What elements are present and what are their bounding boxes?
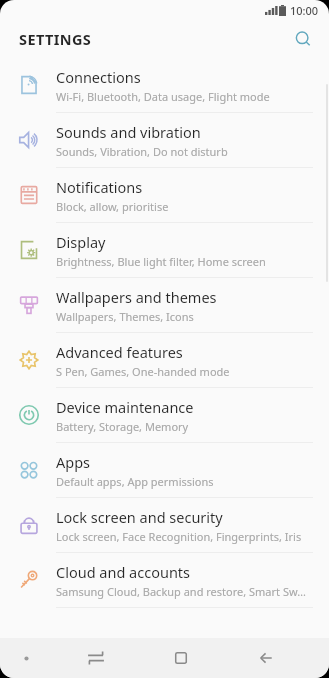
staticText: Block, allow, prioritise	[56, 199, 169, 214]
button[interactable]: Sounds and vibration	[0, 113, 329, 167]
button[interactable]: Apps	[0, 443, 329, 497]
staticText: Advanced features	[56, 342, 183, 362]
staticText: SETTINGS	[19, 29, 92, 49]
staticText: Sounds, Vibration, Do not disturb	[56, 144, 228, 159]
staticText: Brightness, Blue light filter, Home scre…	[56, 254, 266, 269]
button[interactable]: Display	[0, 223, 329, 277]
staticText: Default apps, App permissions	[56, 474, 214, 489]
staticText: S Pen, Games, One-handed mode	[56, 364, 230, 379]
button[interactable]: Lock screen and security	[0, 498, 329, 552]
button[interactable]: Search	[287, 23, 319, 55]
staticText: Connections	[56, 67, 141, 87]
staticText: Samsung Cloud, Backup and restore, Smart…	[56, 584, 306, 599]
staticText: Cloud and accounts	[56, 562, 191, 582]
staticText: Wi-Fi, Bluetooth, Data usage, Flight mod…	[56, 89, 270, 104]
staticText: Battery, Storage, Memory	[56, 419, 189, 434]
button[interactable]: Device maintenance	[0, 388, 329, 442]
button[interactable]: Cloud and accounts	[0, 553, 329, 607]
staticText: Sounds and vibration	[56, 122, 201, 142]
staticText: Wallpapers, Themes, Icons	[56, 309, 194, 324]
staticText: Wallpapers and themes	[56, 287, 217, 307]
button[interactable]: Connections	[0, 58, 329, 112]
staticText: Lock screen and security	[56, 507, 223, 527]
button[interactable]: Home	[138, 638, 223, 678]
staticText: Lock screen, Face Recognition, Fingerpri…	[56, 529, 302, 544]
button[interactable]: Notifications	[0, 168, 329, 222]
staticText: Device maintenance	[56, 397, 194, 417]
button[interactable]: Back	[223, 638, 308, 678]
button[interactable]: Recents	[53, 638, 138, 678]
staticText: Apps	[56, 452, 91, 472]
button[interactable]: Advanced features	[0, 333, 329, 387]
button[interactable]: Wallpapers and themes	[0, 278, 329, 332]
staticText: Notifications	[56, 177, 143, 197]
staticText: 10:00	[290, 3, 319, 18]
staticText: Display	[56, 232, 106, 252]
